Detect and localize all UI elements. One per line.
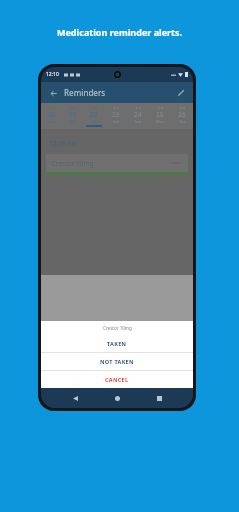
staticText: TAKEN <box>107 340 127 347</box>
button[interactable]: Home <box>109 390 125 406</box>
button[interactable]: Jul <box>127 103 149 129</box>
staticText: 12:00 PM <box>49 139 78 148</box>
button[interactable]: Recent apps <box>151 390 167 406</box>
staticText: Sun <box>134 119 142 124</box>
button[interactable]: Back <box>46 86 60 100</box>
button[interactable]: Back <box>67 390 83 406</box>
button[interactable]: Jul <box>171 103 193 129</box>
staticText: Jul <box>92 105 97 110</box>
staticText: Medication reminder alerts. <box>57 26 183 38</box>
button[interactable]: Edit <box>174 86 188 100</box>
staticText: Wed <box>47 119 56 124</box>
staticText: Jul <box>158 105 163 110</box>
staticText: Fri <box>92 119 97 124</box>
staticText: Tue <box>179 119 186 124</box>
staticText: Jul <box>49 105 54 110</box>
button[interactable]: Jul <box>149 103 171 129</box>
button[interactable]: Jul <box>105 103 127 129</box>
staticText: 20 <box>48 110 56 119</box>
button[interactable]: Jul <box>83 103 105 129</box>
staticText: Jul <box>114 105 119 110</box>
button[interactable]: More options <box>170 157 182 169</box>
staticText: Sat <box>113 119 120 124</box>
staticText: 25 <box>156 110 164 119</box>
button[interactable]: NOT TAKEN <box>41 353 193 370</box>
button[interactable]: Crestor 10mg <box>46 154 188 175</box>
staticText: Crestor 10mg <box>52 159 94 168</box>
staticText: 23 <box>112 110 120 119</box>
button[interactable]: Jul <box>41 103 62 129</box>
staticText: Mon <box>156 119 165 124</box>
staticText: CANCEL <box>105 376 129 383</box>
staticText: Reminders <box>64 87 106 98</box>
staticText: Jul <box>136 105 141 110</box>
button[interactable]: CANCEL <box>41 371 193 388</box>
button[interactable]: TAKEN <box>41 335 193 352</box>
staticText: Crestor 10mg <box>103 325 132 331</box>
staticText: Jul <box>70 105 75 110</box>
staticText: Jul <box>180 105 185 110</box>
button[interactable]: Jul <box>62 103 83 129</box>
staticText: 24 <box>134 110 142 119</box>
staticText: 21 <box>69 110 77 119</box>
staticText: 26 <box>178 110 186 119</box>
staticText: Thu <box>69 119 77 124</box>
staticText: 12:10 <box>46 71 59 78</box>
staticText: NOT TAKEN <box>100 358 134 365</box>
staticText: 22 <box>90 110 98 119</box>
